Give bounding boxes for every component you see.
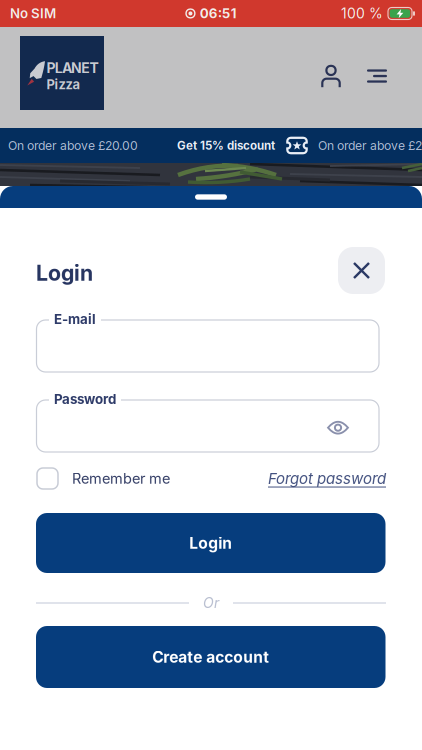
button[interactable]: Create account — [36, 626, 385, 688]
staticText: Create account — [152, 648, 269, 666]
staticText: Forgot password — [268, 469, 386, 487]
staticText: Get 15% discount — [177, 138, 275, 152]
button[interactable]: Remember me — [37, 468, 170, 489]
button[interactable]: Close — [338, 247, 385, 294]
button[interactable]: Account — [321, 64, 341, 88]
staticText: E-mail — [54, 311, 96, 327]
staticText: No SIM — [10, 5, 56, 22]
staticText: On order above £20.00 — [318, 138, 422, 153]
staticText: Remember me — [72, 470, 170, 487]
staticText: Or — [203, 594, 219, 611]
staticText: Password — [54, 391, 116, 407]
button[interactable]: Login — [36, 513, 385, 573]
button[interactable]: Forgot password — [268, 469, 386, 487]
staticText: Pizza — [46, 77, 80, 92]
staticText: 06:51 — [200, 5, 237, 22]
button[interactable]: Menu — [367, 64, 387, 88]
staticText: 100 % — [341, 5, 383, 22]
staticText: Login — [36, 260, 93, 286]
button[interactable]: Show password — [327, 420, 349, 435]
staticText: PLANET — [46, 60, 98, 77]
staticText: On order above £20.00 — [8, 138, 138, 153]
staticText: Login — [189, 534, 232, 552]
